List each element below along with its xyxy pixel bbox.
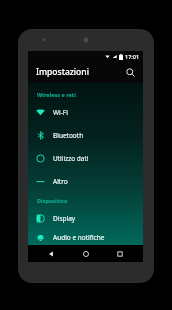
button[interactable]: Back [40, 245, 62, 262]
staticText: Impostazioni [36, 66, 89, 78]
staticText: Bluetooth [53, 131, 84, 140]
staticText: Display [53, 214, 76, 223]
button[interactable]: Audio e notifiche [28, 230, 143, 245]
button[interactable]: Utilizzo dati [28, 147, 143, 170]
button[interactable]: Altro [28, 170, 143, 193]
staticText: Utilizzo dati [53, 154, 89, 163]
button[interactable]: Wi-Fi [28, 101, 143, 124]
staticText: Altro [53, 177, 68, 186]
staticText: 17:01 [125, 53, 140, 60]
button[interactable]: Recents [109, 245, 131, 262]
staticText: Audio e notifiche [53, 233, 105, 242]
button[interactable]: Display [28, 207, 143, 230]
staticText: Wireless e reti [37, 91, 76, 98]
button[interactable]: Search [122, 64, 138, 80]
button[interactable]: Home [75, 245, 97, 262]
staticText: Dispositivo [37, 197, 68, 204]
staticText: Wi-Fi [53, 108, 68, 117]
button[interactable]: Bluetooth [28, 124, 143, 147]
